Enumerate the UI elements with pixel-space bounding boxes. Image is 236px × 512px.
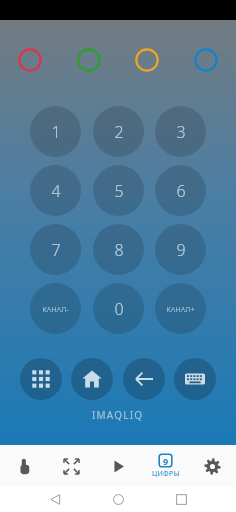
staticText: КАНАЛ+: [166, 304, 195, 314]
button[interactable]: Color button: [18, 48, 42, 72]
staticText: ЦИФРЫ: [152, 469, 180, 479]
button[interactable]: 7: [30, 224, 81, 275]
button[interactable]: Home: [105, 487, 131, 512]
button[interactable]: Recents: [168, 487, 194, 512]
button[interactable]: Home: [71, 358, 113, 400]
staticText: 4: [51, 180, 61, 202]
button[interactable]: 5: [93, 165, 144, 216]
staticText: 7: [51, 239, 61, 261]
staticText: 6: [176, 180, 186, 202]
staticText: 5: [114, 180, 124, 202]
button[interactable]: 8: [93, 224, 144, 275]
button[interactable]: Color button: [194, 48, 218, 72]
button[interactable]: 9: [142, 445, 189, 487]
staticText: IMAQLIQ: [92, 408, 144, 422]
button[interactable]: 0: [93, 283, 144, 334]
button[interactable]: Fullscreen: [48, 445, 95, 487]
staticText: 9: [163, 455, 169, 467]
button[interactable]: Touch: [0, 445, 48, 487]
staticText: 8: [114, 239, 124, 261]
staticText: КАНАЛ-: [42, 304, 69, 314]
staticText: 3: [176, 121, 186, 143]
button[interactable]: Color button: [77, 48, 101, 72]
button[interactable]: КАНАЛ-: [30, 283, 81, 334]
button[interactable]: Color button: [135, 48, 159, 72]
button[interactable]: Keyboard: [174, 358, 216, 400]
staticText: 2: [114, 121, 124, 143]
button[interactable]: Play: [95, 445, 142, 487]
button[interactable]: 6: [155, 165, 206, 216]
button[interactable]: 1: [30, 106, 81, 157]
staticText: 0: [114, 298, 124, 320]
button[interactable]: Apps: [20, 358, 62, 400]
button[interactable]: Settings: [189, 445, 236, 487]
button[interactable]: КАНАЛ+: [155, 283, 206, 334]
button[interactable]: 3: [155, 106, 206, 157]
staticText: 1: [51, 121, 61, 143]
button[interactable]: 4: [30, 165, 81, 216]
button[interactable]: 9: [155, 224, 206, 275]
button[interactable]: Back: [123, 358, 165, 400]
button[interactable]: Back: [42, 487, 68, 512]
button[interactable]: 2: [93, 106, 144, 157]
staticText: 9: [176, 239, 186, 261]
